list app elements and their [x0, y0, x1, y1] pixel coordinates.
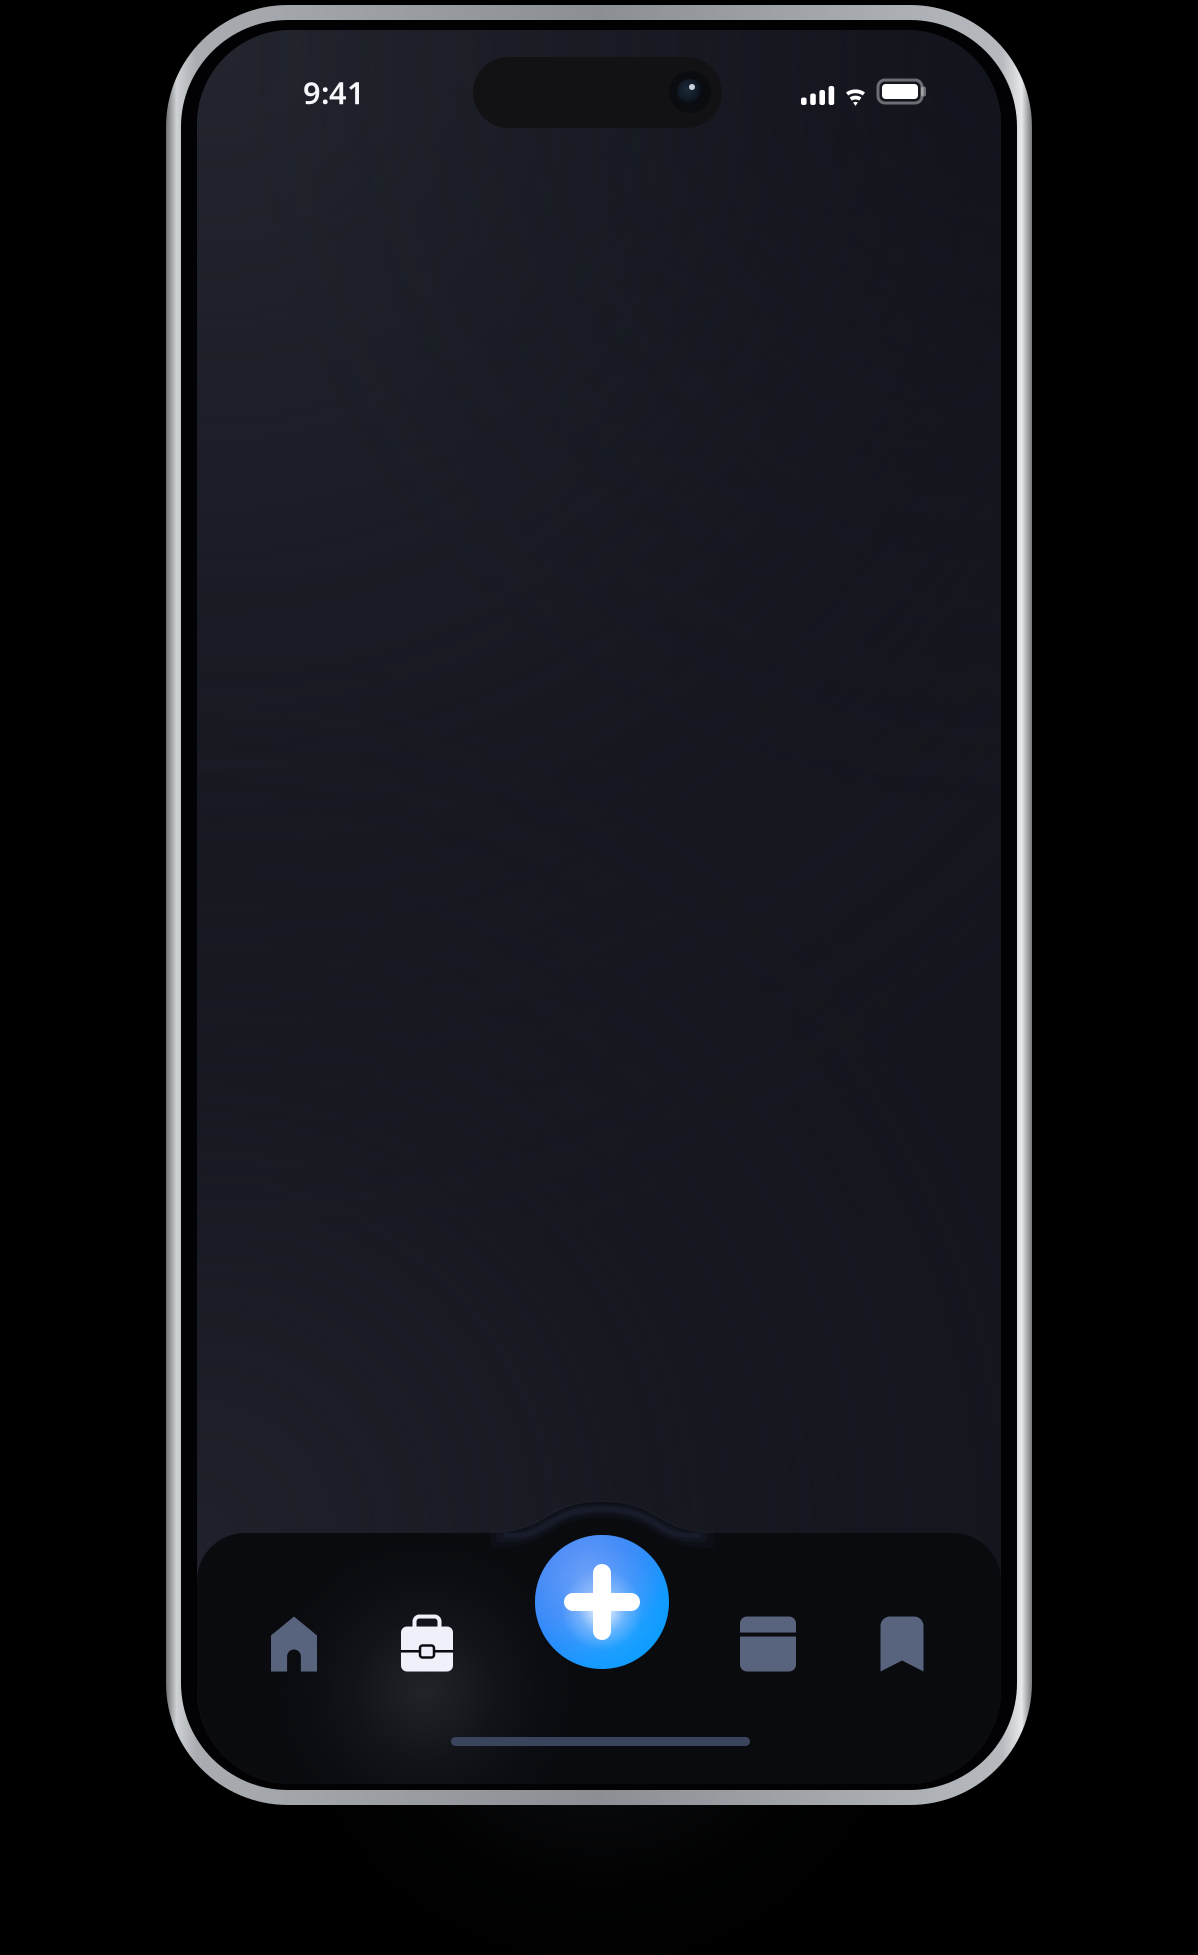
button[interactable]: Work	[375, 1592, 479, 1696]
staticText: 9:41	[303, 72, 365, 113]
button[interactable]: Home	[242, 1592, 346, 1696]
button[interactable]: Create	[535, 1535, 669, 1669]
button[interactable]: Saved	[850, 1592, 954, 1696]
button[interactable]: Browse	[716, 1592, 820, 1696]
